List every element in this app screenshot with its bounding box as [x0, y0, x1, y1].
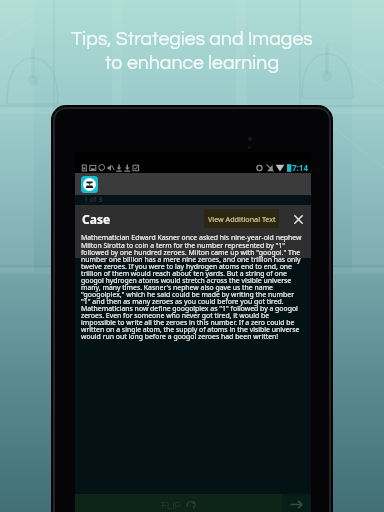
- staticText: View Additional Text: [208, 214, 276, 224]
- button[interactable]: FLIP: [75, 494, 282, 512]
- staticText: 1 of 3: [84, 195, 103, 205]
- button[interactable]: Next: [282, 494, 311, 512]
- button[interactable]: App icon: [81, 176, 98, 193]
- staticText: 7:14: [292, 162, 308, 173]
- button[interactable]: Close: [291, 212, 305, 226]
- button[interactable]: View Additional Text: [204, 209, 279, 228]
- staticText: FLIP: [161, 501, 181, 511]
- staticText: Tips, Strategies and Images: [71, 29, 313, 49]
- staticText: Mathematician Edward Kasner once asked h…: [81, 233, 305, 341]
- staticText: Case: [82, 211, 111, 227]
- staticText: to enhance learning: [105, 53, 279, 73]
